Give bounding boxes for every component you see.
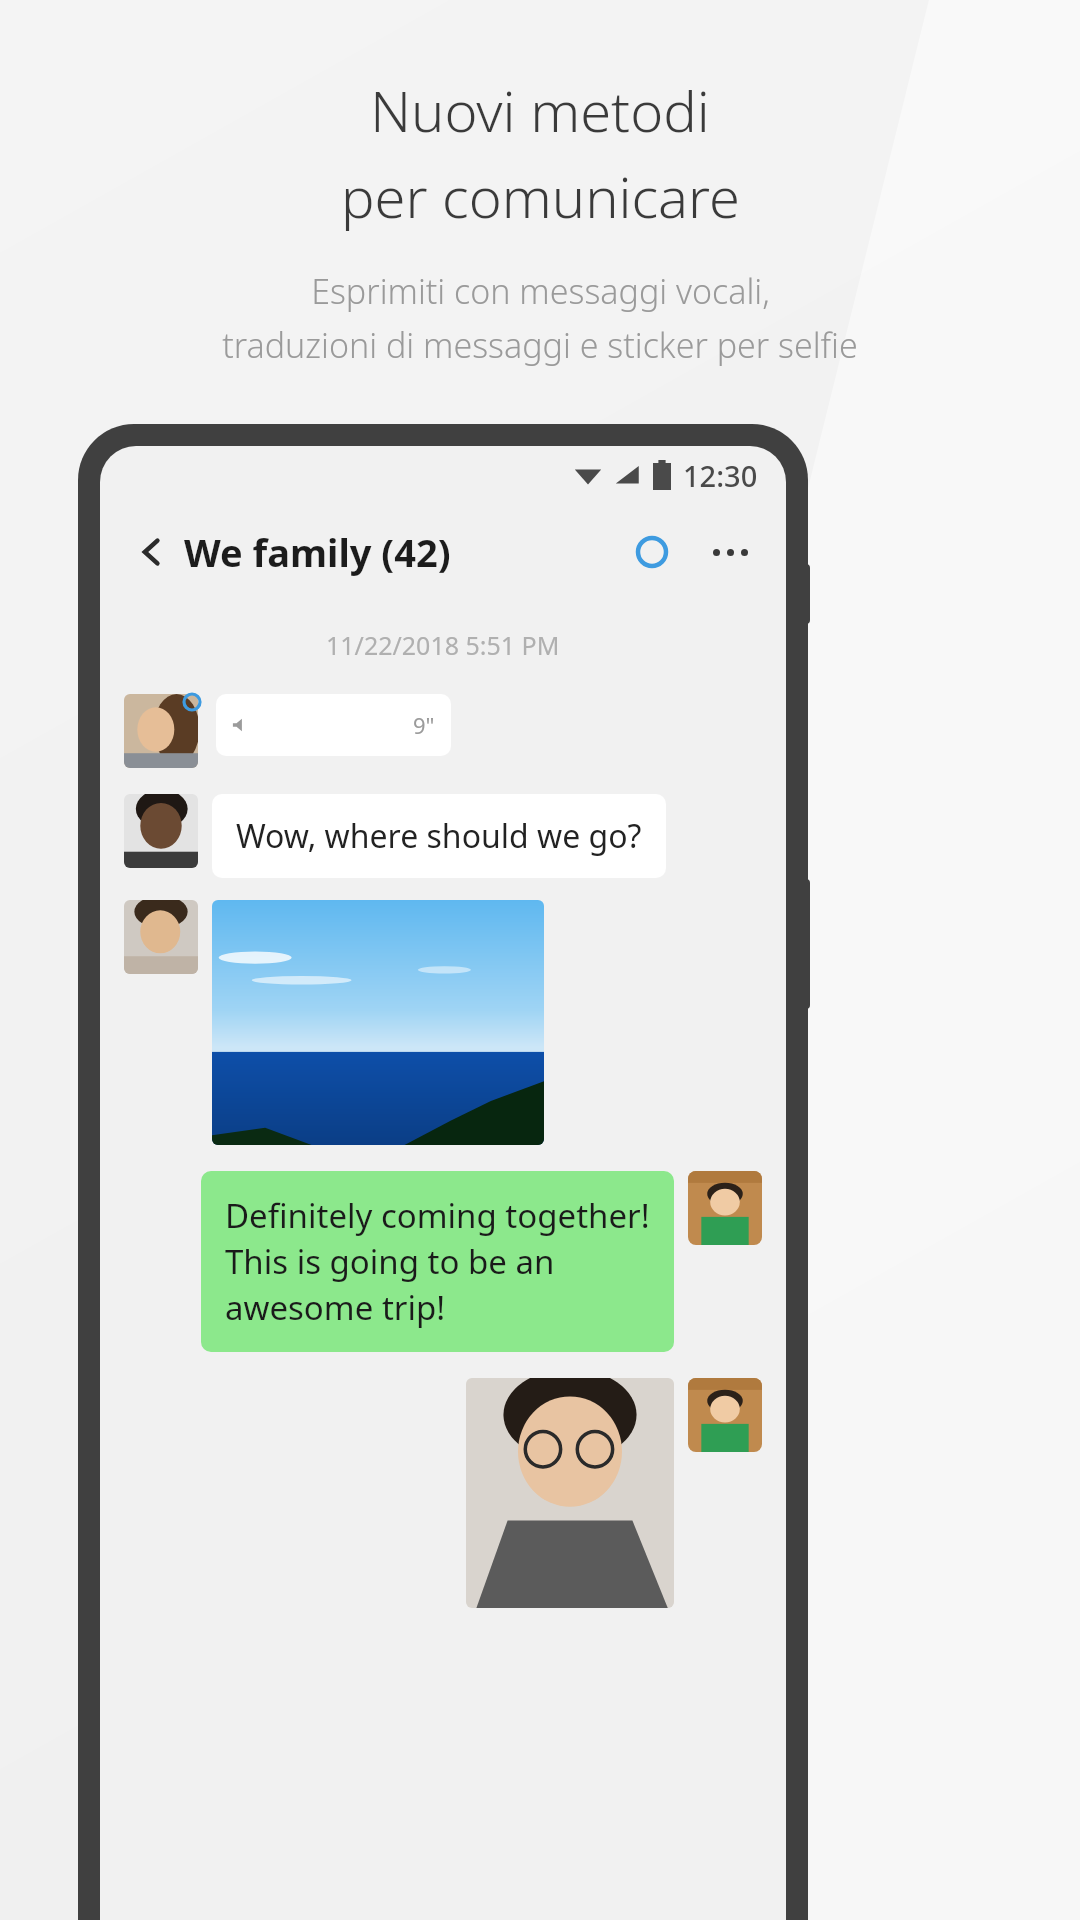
button[interactable]: Definitely coming together! This is goin… — [201, 1171, 674, 1352]
staticText: Definitely coming together! This is goin… — [225, 1193, 650, 1330]
button[interactable]: Photo of the sea — [212, 900, 544, 1145]
staticText: Nuovi metodi — [370, 72, 710, 148]
staticText: 9" — [413, 710, 435, 740]
staticText: Wow, where should we go? — [236, 814, 642, 858]
button[interactable]: Selfie photo — [466, 1378, 674, 1608]
button[interactable]: More options — [704, 526, 756, 578]
button[interactable]: 9" — [216, 694, 451, 756]
button[interactable]: Wow, where should we go? — [212, 794, 666, 878]
button[interactable]: Syncing — [626, 526, 678, 578]
staticText: traduzioni di messaggi e sticker per sel… — [222, 322, 858, 368]
staticText: per comunicare — [341, 158, 740, 234]
button[interactable]: Back — [128, 528, 176, 576]
staticText: We family (42) — [184, 526, 451, 578]
staticText: 12:30 — [683, 456, 758, 495]
staticText: Esprimiti con messaggi vocali, — [311, 268, 770, 314]
staticText: 11/22/2018 5:51 PM — [326, 628, 560, 662]
